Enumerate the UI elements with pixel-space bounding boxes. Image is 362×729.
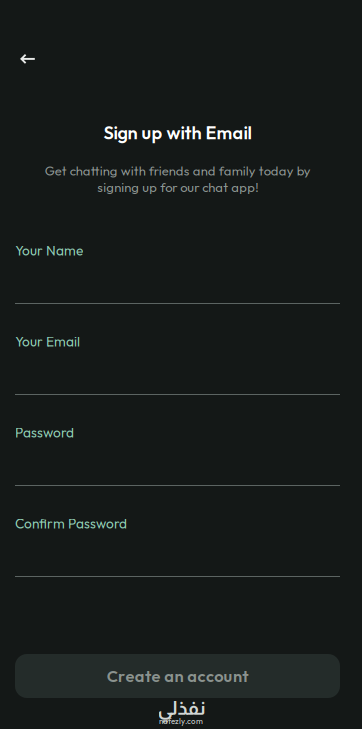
staticText: nafezly.com	[159, 716, 203, 726]
button[interactable]: Back	[15, 37, 56, 81]
staticText: Your Email	[15, 333, 80, 350]
staticText: Password	[15, 424, 74, 441]
staticText: Get chatting with friends and family tod…	[44, 162, 310, 195]
staticText: Your Name	[15, 242, 83, 259]
staticText: Confirm Password	[15, 515, 127, 532]
staticText: Create an account	[107, 666, 248, 686]
button[interactable]: Create an account	[15, 654, 340, 698]
staticText: Sign up with Email	[103, 121, 251, 144]
staticText: نفذلي	[157, 697, 205, 719]
